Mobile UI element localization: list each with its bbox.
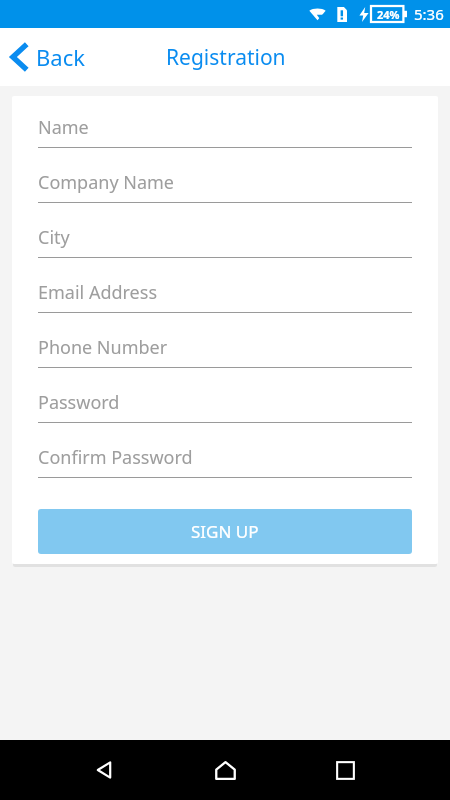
button[interactable]: Confirm Password <box>38 438 412 493</box>
button[interactable]: SIGN UP <box>38 509 412 554</box>
button[interactable]: Email Address <box>38 273 412 328</box>
staticText: 24% <box>377 7 400 22</box>
button[interactable]: City <box>38 218 412 273</box>
staticText: City <box>38 225 70 250</box>
button[interactable]: Home <box>202 747 248 793</box>
staticText: Confirm Password <box>38 445 193 470</box>
button[interactable]: Recent apps <box>322 747 368 793</box>
staticText: Registration <box>166 43 286 72</box>
staticText: 5:36 <box>414 4 444 24</box>
staticText: Name <box>38 115 89 140</box>
button[interactable]: Name <box>38 108 412 163</box>
button[interactable]: Back <box>0 36 97 78</box>
button[interactable]: Phone Number <box>38 328 412 383</box>
staticText: Email Address <box>38 280 158 305</box>
button[interactable]: Password <box>38 383 412 438</box>
button[interactable]: Company Name <box>38 163 412 218</box>
staticText: Back <box>36 42 85 72</box>
staticText: SIGN UP <box>191 520 259 543</box>
staticText: Phone Number <box>38 335 168 360</box>
staticText: Password <box>38 390 120 415</box>
staticText: Company Name <box>38 170 175 195</box>
button[interactable]: Back <box>82 747 128 793</box>
